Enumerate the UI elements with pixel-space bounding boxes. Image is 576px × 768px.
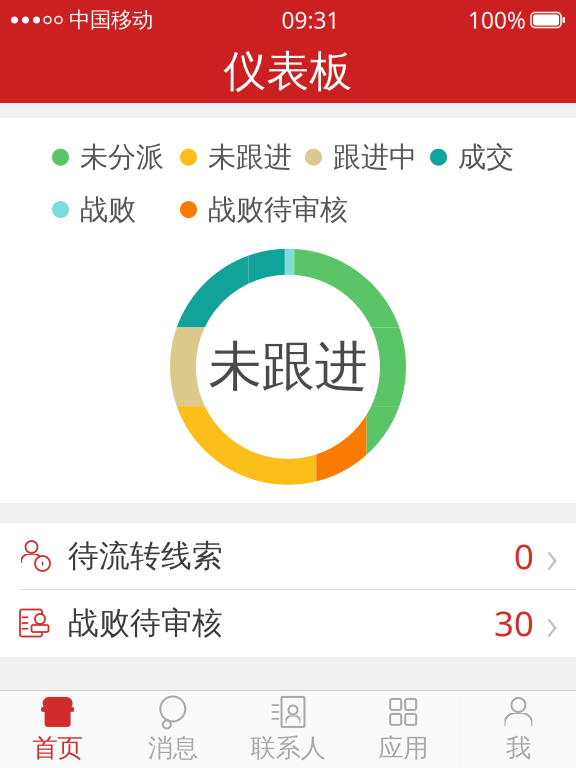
staticText: 09:31 bbox=[281, 5, 339, 35]
staticText: 跟进中 bbox=[333, 140, 417, 174]
staticText: 战败 bbox=[80, 192, 136, 227]
staticText: 战败待审核 bbox=[208, 192, 348, 227]
staticText: 待流转线索 bbox=[68, 537, 223, 575]
staticText: 战败待审核 bbox=[68, 604, 223, 642]
staticText: 未分派 bbox=[80, 140, 164, 174]
button[interactable]: 战败待审核 bbox=[0, 590, 576, 657]
staticText: 100% bbox=[468, 5, 526, 35]
button[interactable]: 应用 bbox=[346, 691, 461, 768]
button[interactable]: 联系人 bbox=[230, 691, 346, 768]
button[interactable]: 我 bbox=[461, 691, 576, 768]
staticText: 未跟进 bbox=[208, 140, 292, 174]
staticText: 0 bbox=[514, 533, 534, 579]
staticText: 30 bbox=[494, 600, 534, 646]
staticText: 未跟进 bbox=[208, 334, 367, 399]
staticText: 我 bbox=[506, 732, 531, 763]
button[interactable]: 消息 bbox=[115, 691, 230, 768]
staticText: 消息 bbox=[148, 732, 198, 763]
staticText: 成交 bbox=[458, 140, 514, 174]
staticText: › bbox=[546, 593, 558, 653]
staticText: 首页 bbox=[33, 732, 83, 763]
staticText: 仪表板 bbox=[223, 45, 352, 98]
button[interactable]: 首页 bbox=[0, 691, 115, 768]
staticText: 联系人 bbox=[250, 732, 325, 763]
button[interactable]: 待流转线索 bbox=[0, 523, 576, 590]
staticText: 中国移动 bbox=[69, 7, 153, 33]
staticText: 应用 bbox=[378, 732, 428, 763]
staticText: › bbox=[546, 526, 558, 586]
